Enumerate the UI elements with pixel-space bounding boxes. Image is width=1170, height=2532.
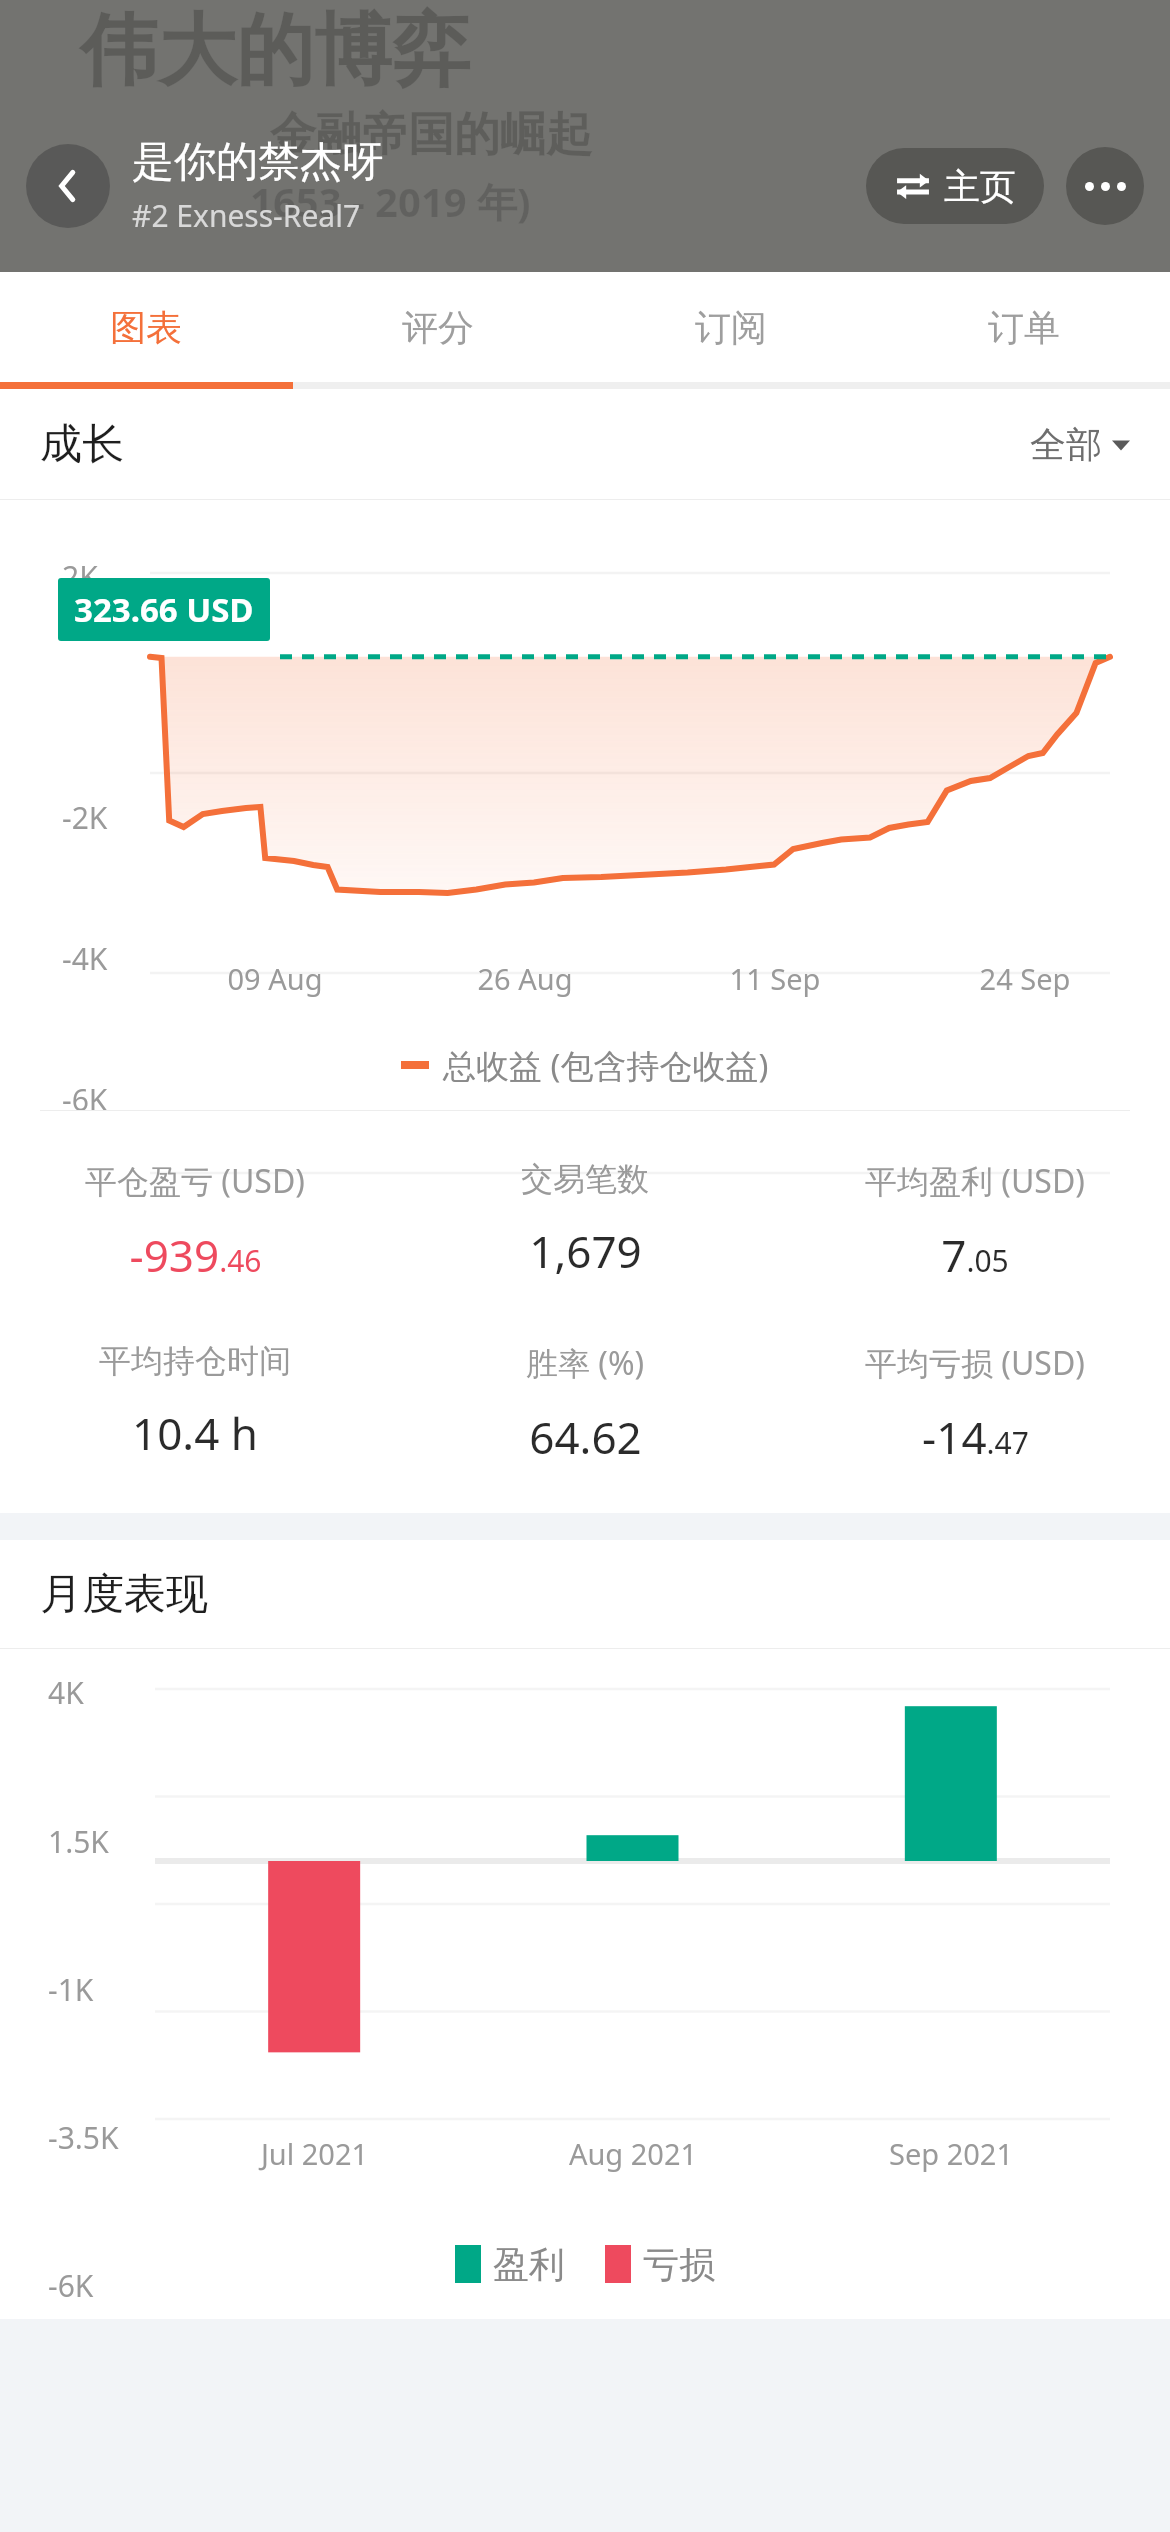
staticText: 24 Sep <box>900 959 1150 998</box>
staticText: 4K <box>48 1672 84 1713</box>
button[interactable]: 主页 <box>866 148 1044 224</box>
staticText: Jul 2021 <box>155 2134 474 2173</box>
staticText: -2K <box>62 797 108 838</box>
button[interactable]: Back <box>26 144 110 228</box>
staticText: 是你的禁杰呀 <box>132 136 384 189</box>
button[interactable]: 图表 <box>0 272 292 382</box>
staticText: 月度表现 <box>40 1568 208 1621</box>
staticText: 平均亏损 (USD) <box>865 1341 1085 1385</box>
staticText: 64.62 <box>529 1407 642 1467</box>
staticText: 伟大的博弈 <box>80 2 470 100</box>
staticText: 金融帝国的崛起 <box>270 106 592 164</box>
staticText: 总收益 (包含持仓收益) <box>443 1043 769 1088</box>
staticText: Aug 2021 <box>474 2134 792 2173</box>
staticText: 平仓盈亏 (USD) <box>85 1159 305 1203</box>
staticText: 09 Aug <box>150 959 400 998</box>
staticText: 评分 <box>402 305 474 350</box>
staticText: 全部 <box>1030 422 1102 467</box>
staticText: 11 Sep <box>650 959 900 998</box>
button[interactable]: 订单 <box>877 272 1170 382</box>
staticText: 26 Aug <box>400 959 650 998</box>
staticText: 图表 <box>110 305 182 350</box>
staticText: 成长 <box>40 418 124 471</box>
staticText: 1,679 <box>529 1221 642 1281</box>
staticText: Sep 2021 <box>792 2134 1110 2173</box>
staticText: 平均盈利 (USD) <box>865 1159 1085 1203</box>
staticText: 323.66 USD <box>74 587 254 632</box>
staticText: 7.05 <box>941 1225 1009 1285</box>
staticText: -6K <box>62 1079 108 1120</box>
staticText: -6K <box>48 2265 94 2306</box>
button[interactable]: 评分 <box>292 272 584 382</box>
staticText: 2K <box>62 556 98 597</box>
staticText: 主页 <box>944 164 1016 209</box>
button[interactable]: 全部 <box>1030 422 1130 467</box>
staticText: -939.46 <box>129 1225 262 1285</box>
staticText: 盈利 <box>493 2242 565 2287</box>
staticText: 1653 - 2019 年) <box>250 174 531 229</box>
button[interactable]: More options <box>1066 147 1144 225</box>
button[interactable]: 订阅 <box>584 272 877 382</box>
staticText: -3.5K <box>48 2117 119 2158</box>
staticText: 平均持仓时间 <box>99 1341 291 1381</box>
staticText: 亏损 <box>643 2242 715 2287</box>
staticText: 交易笔数 <box>521 1159 649 1199</box>
staticText: 胜率 (%) <box>526 1341 645 1385</box>
staticText: -14.47 <box>922 1407 1029 1467</box>
staticText: 订阅 <box>695 305 767 350</box>
staticText: -1K <box>48 1969 94 2010</box>
staticText: 10.4 h <box>132 1403 258 1463</box>
staticText: 订单 <box>988 305 1060 350</box>
staticText: -4K <box>62 938 108 979</box>
staticText: #2 Exness-Real7 <box>132 195 361 236</box>
staticText: 1.5K <box>48 1821 109 1862</box>
